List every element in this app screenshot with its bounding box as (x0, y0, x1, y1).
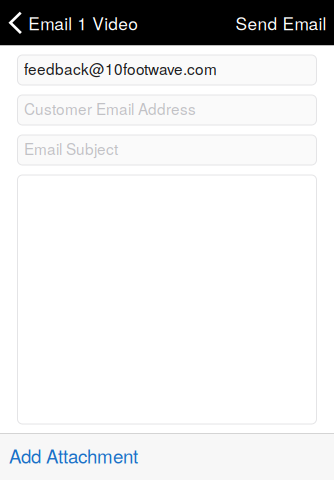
button[interactable]: Add Attachment (0, 433, 334, 480)
button[interactable]: Send Email (225, 0, 334, 45)
staticText: Email 1 Video (28, 10, 138, 35)
button[interactable]: Email 1 Video (0, 0, 145, 45)
staticText: Email Subject (24, 137, 118, 159)
staticText: Customer Email Address (24, 97, 196, 119)
staticText: feedback@10footwave.com (24, 57, 217, 79)
staticText: Send Email (235, 10, 326, 35)
staticText: Add Attachment (9, 442, 138, 469)
